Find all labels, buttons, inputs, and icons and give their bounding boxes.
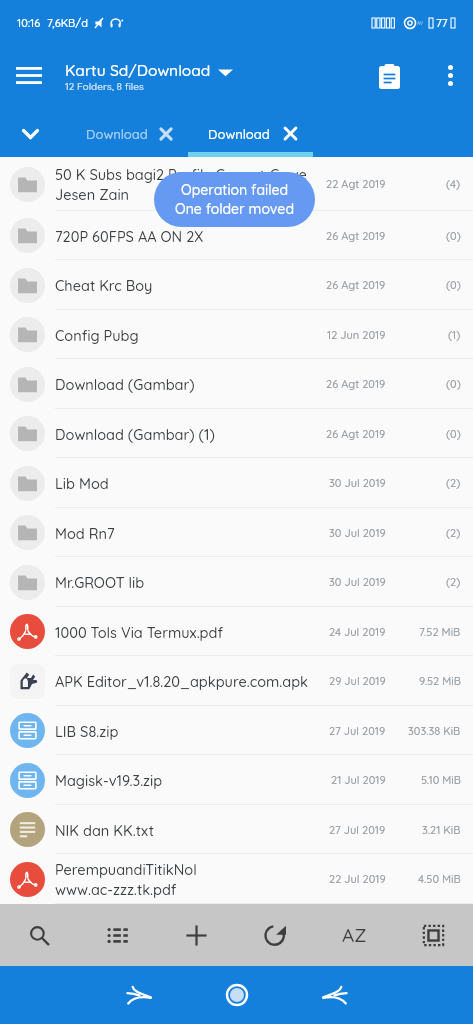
staticText: NIK dan KK.txt [55, 821, 154, 839]
staticText: LIB S8.zip [55, 722, 119, 740]
button[interactable]: APK Editor_v1.8.20_apkpure.com.apk [0, 656, 473, 706]
button[interactable]: Clipboard [367, 54, 411, 98]
staticText: AZ [342, 923, 367, 947]
staticText: Magisk-v19.3.zip [55, 771, 163, 789]
staticText: 1000 Tols Via Termux.pdf [55, 623, 223, 641]
staticText: Download (Gambar) (1) [55, 425, 215, 443]
staticText: (4) [446, 177, 461, 191]
staticText: 3.21 KiB [422, 823, 461, 837]
button[interactable]: Mr.GROOT lib [0, 557, 473, 607]
staticText: 22 Agt 2019 [326, 177, 386, 191]
staticText: (2) [446, 476, 461, 490]
staticText: (2) [446, 575, 461, 589]
staticText: Download [208, 126, 270, 142]
button[interactable]: More options [427, 41, 473, 110]
staticText: 50 K Subs bagi2 Profile Cowo + Cewe [55, 165, 307, 183]
staticText: 26 Agt 2019 [326, 427, 386, 441]
staticText: (1) [448, 328, 461, 342]
staticText: Config Pubg [55, 326, 139, 344]
button[interactable]: Download [86, 110, 188, 157]
button[interactable]: Sort [315, 904, 394, 966]
staticText: 29 Jul 2019 [329, 674, 386, 688]
staticText: 26 Agt 2019 [326, 377, 386, 391]
staticText: AV [417, 20, 424, 26]
staticText: 4.50 MiB [418, 872, 461, 886]
staticText: 10:16 [17, 16, 41, 30]
button[interactable]: Config Pubg [0, 310, 473, 359]
staticText: (0) [446, 278, 461, 292]
staticText: 77 [436, 16, 448, 30]
button[interactable]: Select all [394, 904, 473, 966]
button[interactable]: 1000 Tols Via Termux.pdf [0, 607, 473, 656]
staticText: 30 Jul 2019 [329, 476, 386, 490]
button[interactable]: Mod Rn7 [0, 508, 473, 557]
button[interactable]: View mode [78, 904, 157, 966]
staticText: Kartu Sd/Download [65, 60, 211, 79]
staticText: Download [86, 126, 148, 142]
button[interactable]: Show tabs [0, 110, 60, 157]
staticText: 12 Jun 2019 [327, 328, 386, 342]
staticText: 5.10 MiB [421, 773, 461, 787]
staticText: Mr.GROOT lib [55, 573, 145, 591]
button[interactable]: Close tab [158, 126, 174, 142]
button[interactable]: Change path [217, 63, 234, 80]
button[interactable]: 720P 60FPS AA ON 2X [0, 211, 473, 260]
button[interactable]: Close tab [282, 125, 299, 142]
staticText: 22 Jul 2019 [329, 872, 386, 886]
button[interactable]: Magisk-v19.3.zip [0, 755, 473, 805]
staticText: (2) [446, 526, 461, 540]
staticText: Jesen Zain [55, 185, 130, 203]
staticText: Download (Gambar) [55, 375, 195, 393]
staticText: 27 Jul 2019 [329, 724, 386, 738]
staticText: 21 Jul 2019 [331, 773, 386, 787]
staticText: 7.52 MiB [419, 625, 461, 639]
button[interactable]: Download (Gambar) (1) [0, 409, 473, 458]
button[interactable]: Search [0, 904, 78, 966]
button[interactable]: NIK dan KK.txt [0, 805, 473, 854]
staticText: (0) [446, 377, 461, 391]
button[interactable]: Home [188, 966, 286, 1024]
button[interactable]: Refresh [236, 904, 315, 966]
button[interactable]: LIB S8.zip [0, 706, 473, 755]
button[interactable]: Recent apps [286, 966, 384, 1024]
staticText: 26 Agt 2019 [326, 278, 386, 292]
staticText: (0) [446, 427, 461, 441]
staticText: www.ac-zzz.tk.pdf [55, 880, 177, 898]
staticText: Operation failed [181, 181, 289, 199]
staticText: 27 Jul 2019 [329, 823, 386, 837]
button[interactable]: PerempuandiTitikNol [0, 854, 473, 904]
button[interactable]: Add [157, 904, 236, 966]
staticText: 720P 60FPS AA ON 2X [55, 227, 204, 245]
button[interactable]: Download (Gambar) [0, 359, 473, 409]
button[interactable]: Lib Mod [0, 458, 473, 508]
staticText: 12 Folders, 8 files [65, 80, 144, 93]
button[interactable]: Back [90, 966, 188, 1024]
staticText: (0) [446, 229, 461, 243]
staticText: One folder moved [175, 200, 294, 218]
staticText: 9.52 MiB [419, 674, 461, 688]
staticText: Mod Rn7 [55, 524, 115, 542]
staticText: APK Editor_v1.8.20_apkpure.com.apk [55, 672, 309, 690]
staticText: PerempuandiTitikNol [55, 860, 197, 878]
staticText: 30 Jul 2019 [329, 526, 386, 540]
staticText: 24 Jul 2019 [329, 625, 386, 639]
staticText: Cheat Krc Boy [55, 276, 153, 294]
button[interactable]: Cheat Krc Boy [0, 260, 473, 310]
staticText: Lib Mod [55, 474, 109, 492]
staticText: 7,6KB/d [47, 16, 88, 30]
button[interactable]: Open navigation menu [0, 41, 58, 110]
button[interactable]: Download [208, 110, 313, 157]
staticText: 303.38 KiB [408, 724, 461, 738]
staticText: 26 Agt 2019 [326, 229, 386, 243]
button[interactable]: 50 K Subs bagi2 Profile Cowo + Cewe [0, 157, 473, 211]
staticText: 30 Jul 2019 [329, 575, 386, 589]
